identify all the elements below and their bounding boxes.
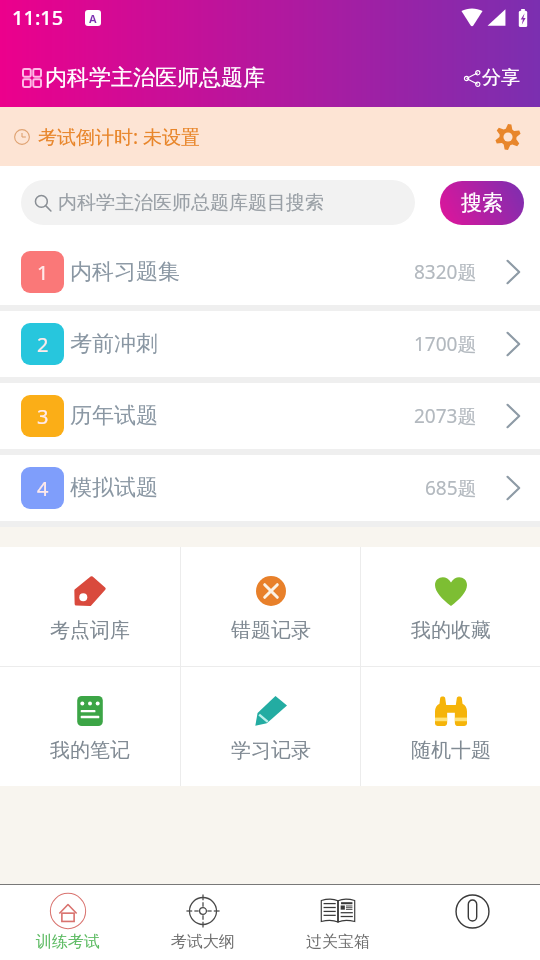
staticText: 11:15: [12, 4, 64, 31]
staticText: 2: [37, 331, 49, 358]
button[interactable]: 分享: [462, 58, 522, 98]
staticText: 考前冲刺: [70, 330, 158, 358]
button[interactable]: 搜索: [440, 181, 524, 225]
staticText: 错题记录: [231, 618, 311, 642]
button[interactable]: 内科学主治医师总题库题目搜索: [21, 180, 415, 225]
staticText: 我的笔记: [50, 738, 130, 762]
staticText: 训练考试: [36, 932, 100, 952]
button[interactable]: More: [405, 885, 540, 960]
staticText: 4: [37, 475, 49, 502]
staticText: 2073题: [414, 403, 477, 429]
staticText: 随机十题: [411, 738, 491, 762]
staticText: 过关宝箱: [306, 932, 370, 952]
staticText: 内科学主治医师总题库: [45, 64, 265, 92]
button[interactable]: 训练考试: [0, 885, 135, 960]
staticText: 考试倒计时: 未设置: [38, 124, 201, 150]
staticText: 内科习题集: [70, 258, 180, 286]
staticText: 我的收藏: [411, 618, 491, 642]
staticText: 685题: [425, 475, 477, 501]
staticText: 搜索: [461, 190, 503, 216]
button[interactable]: 错题记录: [181, 547, 360, 666]
staticText: 考点词库: [50, 618, 130, 642]
button[interactable]: Settings: [488, 117, 528, 157]
button[interactable]: 4: [0, 455, 540, 521]
button[interactable]: 1: [0, 239, 540, 305]
staticText: 分享: [482, 66, 520, 90]
button[interactable]: 3: [0, 383, 540, 449]
button[interactable]: 我的收藏: [361, 547, 540, 666]
staticText: 3: [37, 403, 49, 430]
button[interactable]: 考点词库: [0, 547, 180, 666]
staticText: 历年试题: [70, 402, 158, 430]
staticText: 学习记录: [231, 738, 311, 762]
button[interactable]: 随机十题: [361, 667, 540, 786]
staticText: A: [89, 11, 97, 26]
staticText: 1: [37, 259, 49, 286]
staticText: 考试大纲: [171, 932, 235, 952]
staticText: 8320题: [414, 259, 477, 285]
button[interactable]: 过关宝箱: [270, 885, 405, 960]
button[interactable]: 考试大纲: [135, 885, 270, 960]
staticText: 内科学主治医师总题库题目搜索: [58, 191, 324, 215]
staticText: 模拟试题: [70, 474, 158, 502]
button[interactable]: 学习记录: [181, 667, 360, 786]
button[interactable]: 我的笔记: [0, 667, 180, 786]
staticText: 1700题: [414, 331, 477, 357]
button[interactable]: 2: [0, 311, 540, 377]
